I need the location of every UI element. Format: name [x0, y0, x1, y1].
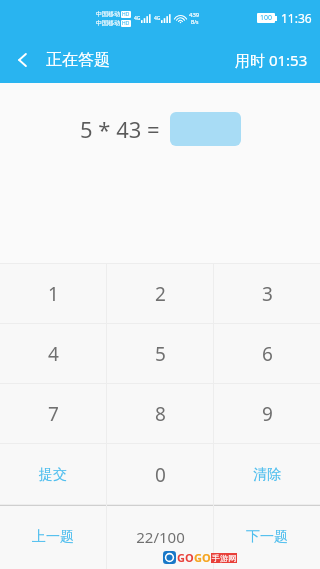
staticText: 9	[262, 401, 273, 427]
button[interactable]	[170, 112, 241, 146]
button[interactable]: 清除	[214, 444, 320, 505]
staticText: 正在答题	[46, 50, 110, 70]
button[interactable]: 2	[107, 264, 213, 324]
button[interactable]: 3	[214, 264, 320, 324]
staticText: B/s	[191, 19, 199, 26]
staticText: 439	[189, 11, 200, 19]
button[interactable]: 9	[214, 384, 320, 444]
staticText: 8	[155, 401, 166, 427]
staticText: 上一题	[32, 528, 74, 546]
staticText: GO	[177, 550, 194, 565]
staticText: 0	[155, 462, 166, 488]
staticText: 中国移动	[96, 10, 120, 18]
button[interactable]: 7	[0, 384, 106, 444]
staticText: 提交	[39, 466, 67, 484]
staticText: 4G	[154, 15, 161, 22]
button[interactable]: 1	[0, 264, 106, 324]
button[interactable]: 5	[107, 324, 213, 384]
button[interactable]: 上一题	[0, 505, 106, 569]
staticText: 1	[48, 281, 59, 307]
button[interactable]: 4	[0, 324, 106, 384]
staticText: 下一题	[246, 528, 288, 546]
staticText: GO	[194, 550, 211, 565]
staticText: 5 * 43 =	[80, 114, 160, 144]
staticText: HD	[122, 11, 130, 18]
staticText: 4	[48, 341, 59, 367]
staticText: 中国移动	[96, 19, 120, 27]
staticText: 手游网	[212, 553, 236, 563]
staticText: 100	[260, 13, 273, 23]
staticText: HD	[122, 20, 130, 27]
button[interactable]: 提交	[0, 444, 106, 505]
staticText: 22/100	[136, 527, 185, 547]
button[interactable]: 6	[214, 324, 320, 384]
staticText: 6	[262, 341, 273, 367]
staticText: 4G	[134, 15, 141, 22]
staticText: 11:36	[281, 10, 312, 26]
staticText: 5	[155, 341, 166, 367]
staticText: 用时 01:53	[235, 50, 308, 70]
button[interactable]: 下一题	[214, 505, 320, 569]
staticText: 清除	[253, 466, 281, 484]
button[interactable]: 8	[107, 384, 213, 444]
staticText: 7	[48, 401, 59, 427]
staticText: 3	[262, 281, 273, 307]
button[interactable]: Back	[0, 37, 46, 83]
button[interactable]: 22/100	[107, 505, 213, 569]
staticText: 2	[155, 281, 166, 307]
button[interactable]: 0	[107, 444, 213, 505]
